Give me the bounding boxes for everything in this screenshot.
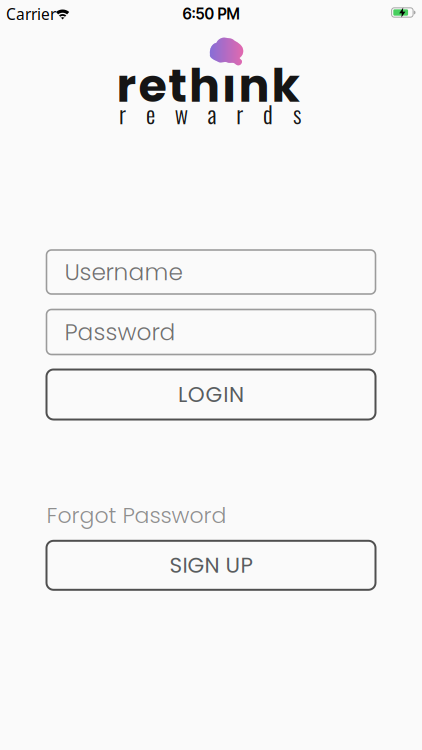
staticText: Password: [64, 316, 175, 348]
staticText: s: [293, 97, 301, 131]
staticText: Carrier: [6, 3, 56, 24]
staticText: d: [263, 97, 273, 131]
staticText: e: [146, 97, 155, 131]
staticText: r: [119, 97, 126, 131]
staticText: a: [207, 97, 216, 131]
button[interactable]: Password: [46, 309, 375, 354]
staticText: Username: [64, 256, 182, 288]
staticText: rethınk: [117, 53, 299, 118]
button[interactable]: Username: [46, 250, 375, 294]
staticText: Forgot Password: [46, 500, 226, 531]
button[interactable]: Forgot Password: [46, 500, 226, 531]
staticText: SIGN UP: [169, 550, 252, 580]
staticText: w: [175, 97, 188, 131]
staticText: r: [236, 97, 243, 131]
staticText: LOGIN: [178, 379, 244, 409]
button[interactable]: SIGN UP: [46, 541, 375, 590]
button[interactable]: LOGIN: [46, 369, 375, 419]
staticText: 6:50 PM: [182, 5, 239, 23]
